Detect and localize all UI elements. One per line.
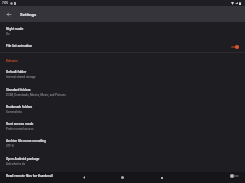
button[interactable]: Root access mode xyxy=(0,117,245,134)
staticText: Prefer normal access xyxy=(6,127,34,130)
staticText: Root access mode xyxy=(6,122,34,126)
button[interactable]: Read remote files for thumbnail xyxy=(0,169,245,178)
button[interactable]: Default folder xyxy=(0,65,245,82)
staticText: Night mode xyxy=(6,27,24,31)
staticText: Bookmark folders xyxy=(6,105,33,109)
button[interactable]: File list animation xyxy=(0,39,245,52)
staticText: Open Android package xyxy=(6,157,40,161)
staticText: Standard folders xyxy=(6,88,31,92)
staticText: DCIM, Downloads, Movies, Music, and Pict… xyxy=(6,93,66,96)
button[interactable]: Open Android package xyxy=(0,152,245,169)
staticText: UTF-8 xyxy=(6,144,14,147)
staticText: Screenshots xyxy=(6,110,23,113)
button[interactable]: Bookmark folders xyxy=(0,100,245,117)
button[interactable]: Back xyxy=(64,172,103,183)
button[interactable]: Navigate up xyxy=(1,6,17,22)
button[interactable]: Home xyxy=(103,172,142,183)
staticText: On xyxy=(6,32,10,35)
staticText: Settings xyxy=(20,12,37,17)
button[interactable]: Recent apps xyxy=(142,172,181,183)
button[interactable]: Turn on xyxy=(230,174,240,178)
staticText: Ask what to do xyxy=(6,162,26,165)
staticText: Read remote files for thumbnail xyxy=(6,174,230,178)
staticText: File list animation xyxy=(6,44,230,48)
staticText: 7:05 xyxy=(2,1,8,5)
staticText: Internal shared storage xyxy=(6,75,36,78)
button[interactable]: Standard folders xyxy=(0,83,245,100)
staticText: Behavior xyxy=(6,59,18,63)
button[interactable]: Archive file name encoding xyxy=(0,134,245,151)
staticText: Archive file name encoding xyxy=(6,139,46,143)
button[interactable]: Night mode xyxy=(0,22,245,39)
button[interactable]: Turn off xyxy=(230,44,240,49)
staticText: Default folder xyxy=(6,70,27,74)
